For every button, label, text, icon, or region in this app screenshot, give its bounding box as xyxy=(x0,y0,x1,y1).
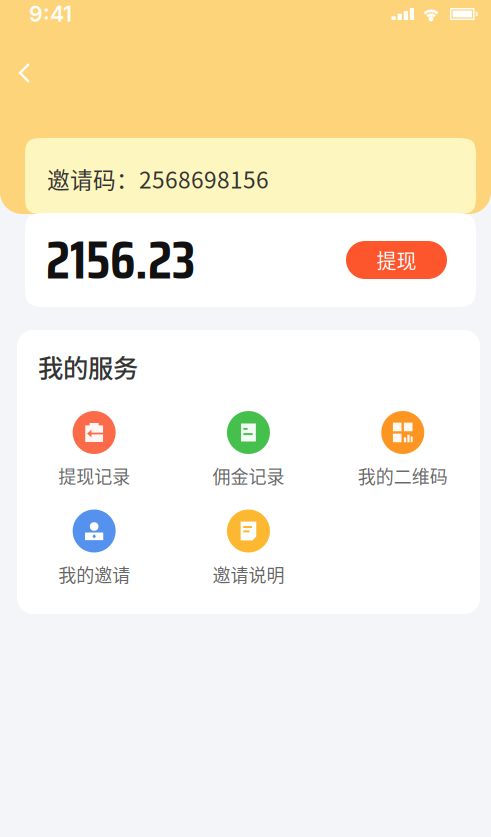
button[interactable]: Back xyxy=(3,52,45,94)
staticText: 佣金记录 xyxy=(212,462,284,489)
staticText: 2156.23 xyxy=(46,218,195,302)
staticText: 我的二维码 xyxy=(358,462,448,489)
staticText: 我的邀请 xyxy=(58,561,130,587)
staticText: 邀请码：2568698156 xyxy=(47,162,269,195)
button[interactable]: 我的邀请 xyxy=(17,509,171,586)
button[interactable]: 我的二维码 xyxy=(326,411,480,488)
staticText: 9:41 xyxy=(29,1,72,27)
button[interactable]: 提现 xyxy=(346,241,447,279)
staticText: 提现记录 xyxy=(58,462,130,489)
staticText: 我的服务 xyxy=(38,348,138,385)
staticText: 邀请说明 xyxy=(212,561,284,587)
button[interactable]: 邀请说明 xyxy=(171,509,326,586)
button[interactable]: 佣金记录 xyxy=(171,411,326,488)
button[interactable]: 提现记录 xyxy=(17,411,171,488)
staticText: 提现 xyxy=(376,245,416,274)
